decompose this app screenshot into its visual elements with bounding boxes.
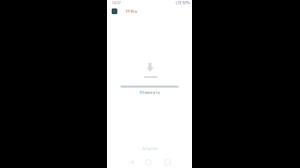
staticText: 11 Pro [125, 9, 136, 14]
staticText: LTE 87% [175, 0, 189, 5]
staticText: 14:07 [111, 0, 120, 5]
button[interactable]: 11 Pro [112, 7, 138, 15]
button[interactable]: Home [146, 159, 151, 165]
button[interactable]: Back [129, 160, 134, 165]
button[interactable]: Recents [165, 160, 170, 165]
staticText: Отменить [139, 90, 159, 95]
staticText: Загрузка [141, 145, 157, 151]
